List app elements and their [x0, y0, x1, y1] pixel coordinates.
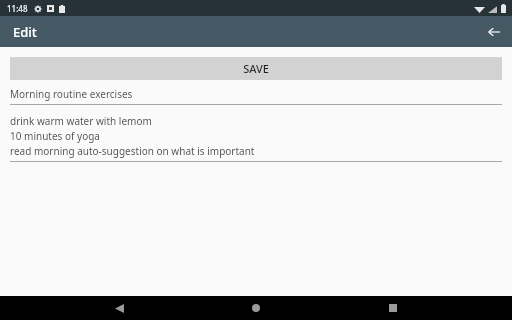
button[interactable]: Home: [238, 296, 274, 320]
staticText: Edit: [13, 23, 37, 41]
staticText: Morning routine exercises: [10, 87, 133, 101]
staticText: drink warm water with lemom: [10, 114, 152, 128]
staticText: 11:48: [7, 3, 28, 14]
staticText: read morning auto-suggestion on what is …: [10, 144, 255, 158]
button[interactable]: Back: [101, 296, 137, 320]
staticText: 10 minutes of yoga: [10, 129, 100, 143]
button[interactable]: Back: [482, 20, 506, 44]
staticText: SAVE: [243, 61, 269, 76]
button[interactable]: Recent apps: [375, 296, 411, 320]
button[interactable]: SAVE: [10, 57, 502, 80]
